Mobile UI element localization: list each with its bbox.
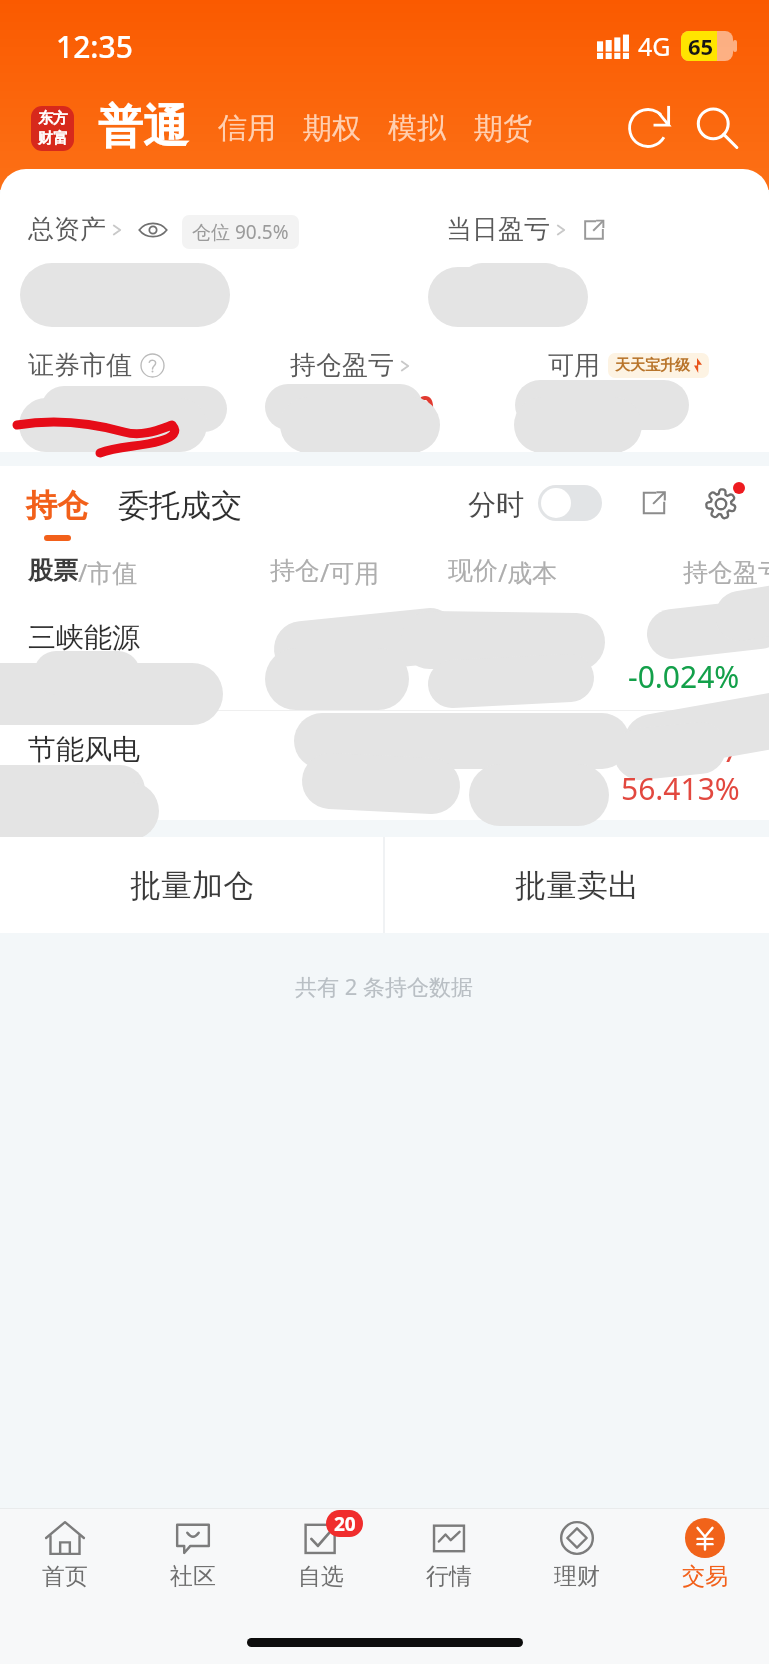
button[interactable]: 当日盈亏 [446,213,607,246]
staticText: 65 [688,31,714,61]
button[interactable]: 委托成交 [118,486,242,525]
button[interactable]: 首页 [0,1509,129,1614]
button[interactable]: Time sharing toggle [538,485,602,521]
button[interactable]: 仓位 90.5% [182,215,299,249]
staticText: 20 [334,1511,356,1537]
staticText: 17.00 [352,385,435,429]
staticText: 证券市值 [28,349,132,382]
staticText: +47 [688,730,740,771]
staticText: 现价 [448,555,498,586]
staticText: 东方 [38,109,68,128]
button[interactable]: 信用 [218,110,276,147]
staticText: 批量卖出 [515,866,639,905]
button[interactable] [0,722,769,834]
button[interactable]: 持仓 [26,486,88,541]
staticText: 普通 [98,99,188,156]
button[interactable]: Export [633,482,675,524]
staticText: 股票 [28,555,78,586]
staticText: 可用 [548,349,600,382]
staticText: /市值 [78,555,138,589]
staticText: 持仓 [270,555,320,586]
staticText: 总资产 [28,213,106,246]
button[interactable]: 社区 [129,1509,257,1614]
staticText: 首页 [42,1562,88,1591]
button[interactable]: 天天宝升级 [608,353,709,378]
staticText: 持仓盈亏 [683,557,769,588]
button[interactable]: Refresh [620,100,676,156]
staticText: /成本 [498,555,558,589]
button[interactable]: 持仓盈亏 [290,349,413,382]
button[interactable]: 20 [257,1509,385,1614]
button[interactable]: 理财 [513,1509,641,1614]
staticText: 仓位 90.5% [192,219,289,245]
button[interactable]: 期货 [474,110,532,147]
button[interactable]: 行情 [385,1509,513,1614]
button[interactable] [0,610,769,722]
staticText: 56.413% [621,768,740,809]
staticText: 当日盈亏 [446,213,550,246]
staticText: 持仓盈亏 [290,349,394,382]
button[interactable]: 批量加仓 [0,837,383,933]
staticText: 6,178.78 [28,257,204,317]
staticText: /可用 [320,555,380,589]
staticText: 交易 [682,1562,728,1591]
button[interactable]: 总资产 [28,213,169,246]
staticText: 节能风电 [28,732,140,767]
button[interactable]: 期权 [303,110,361,147]
staticText: 理财 [554,1562,600,1591]
staticText: 财富 [38,129,68,148]
staticText: -0.024% [628,656,740,697]
staticText: 批量加仓 [130,866,254,905]
staticText: 行情 [426,1562,472,1591]
staticText: 自选 [298,1562,344,1591]
staticText: 三峡能源 [28,620,140,655]
button[interactable]: 交易 [641,1509,769,1614]
staticText: 天天宝升级 [615,356,690,375]
button[interactable]: Search [688,100,744,156]
staticText: 12:35 [56,26,133,67]
staticText: 持仓 [26,486,88,525]
staticText: 分时 [468,487,524,522]
button[interactable]: Settings [698,479,746,527]
staticText: 共有 2 条持仓数据 [295,971,474,1001]
button[interactable]: 批量卖出 [384,837,769,933]
button[interactable]: 模拟 [388,110,446,147]
staticText: 4G [638,29,671,63]
button[interactable]: East Money [31,106,74,151]
staticText: 社区 [170,1562,216,1591]
